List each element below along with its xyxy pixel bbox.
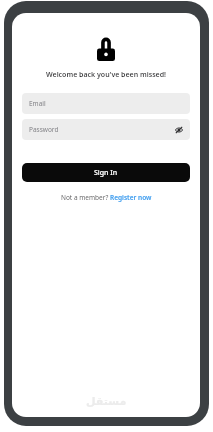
staticText: Register now xyxy=(110,193,152,202)
staticText: مستقل xyxy=(86,395,127,408)
button[interactable]: Show password xyxy=(173,124,184,135)
staticText: Password xyxy=(29,125,59,134)
staticText: Email xyxy=(29,99,46,108)
staticText: Not a member? xyxy=(61,193,110,202)
staticText: Welcome back you've been missed! xyxy=(46,70,166,80)
button[interactable]: Not a member? xyxy=(59,192,154,203)
button[interactable]: Email xyxy=(22,93,190,114)
button[interactable]: Sign In xyxy=(22,163,190,182)
staticText: Sign In xyxy=(94,168,118,178)
button[interactable]: Password xyxy=(22,119,190,140)
